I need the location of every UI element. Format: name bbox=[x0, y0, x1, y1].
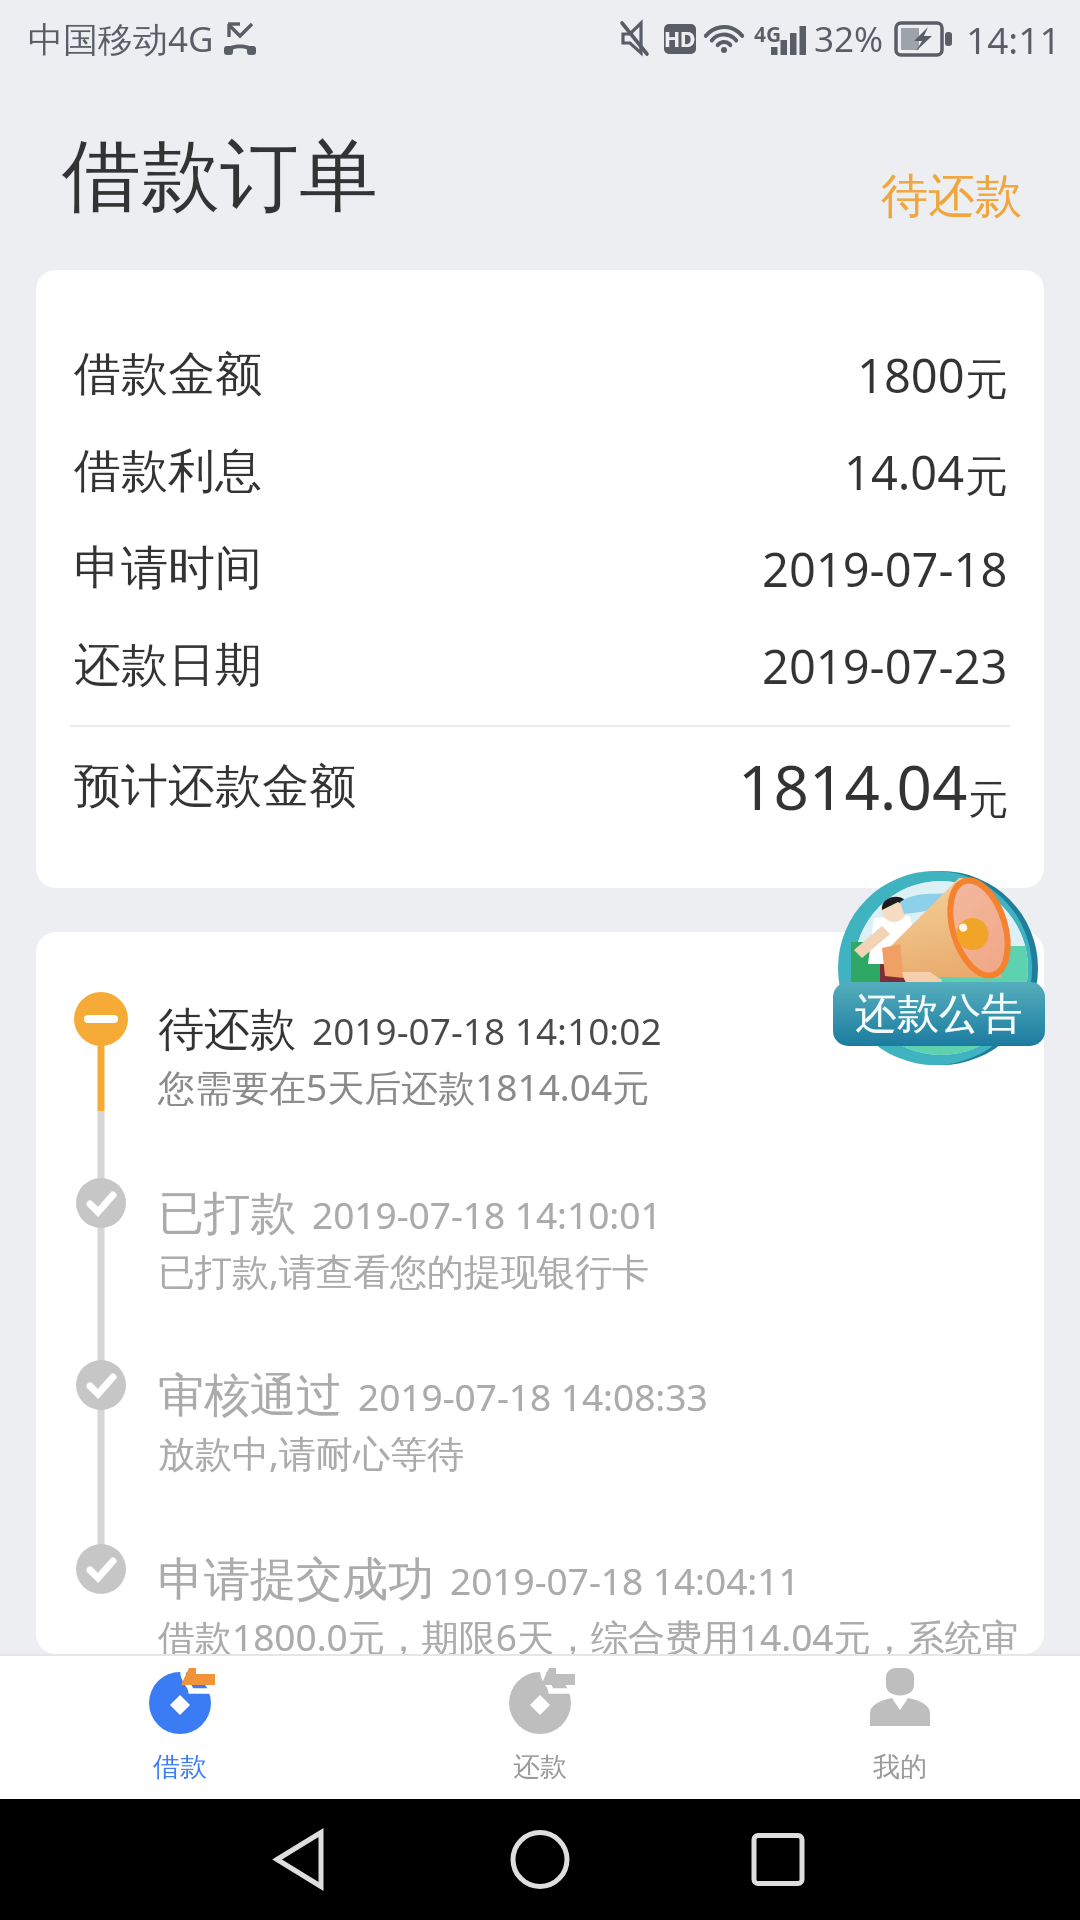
staticText: 借款 bbox=[153, 1750, 207, 1784]
staticText: 2019-07-18 14:10:01 bbox=[312, 1189, 662, 1239]
staticText: 申请提交成功 bbox=[158, 1551, 434, 1609]
staticText: 2019-07-23 bbox=[762, 634, 1008, 698]
staticText: 借款金额 bbox=[74, 345, 262, 404]
staticText: 还款日期 bbox=[74, 636, 262, 695]
button[interactable]: Recent apps bbox=[720, 1799, 1080, 1920]
staticText: 1814.04 bbox=[738, 744, 968, 828]
staticText: 1800 bbox=[857, 343, 965, 407]
button[interactable]: 已打款 bbox=[158, 1185, 1044, 1296]
button[interactable]: 借款金额 bbox=[36, 270, 1044, 888]
staticText: 元 bbox=[965, 353, 1008, 407]
staticText: 预计还款金额 bbox=[74, 757, 356, 816]
staticText: 待还款 bbox=[158, 1001, 296, 1059]
staticText: 元 bbox=[968, 774, 1008, 824]
button[interactable]: 待还款 bbox=[875, 161, 1028, 232]
staticText: 您需要在5天后还款1814.04元 bbox=[158, 1061, 650, 1112]
staticText: 已打款 bbox=[158, 1185, 296, 1243]
staticText: 2019-07-18 14:04:11 bbox=[450, 1555, 800, 1605]
staticText: 元 bbox=[965, 450, 1008, 504]
staticText: 我的 bbox=[873, 1750, 927, 1784]
button[interactable]: 借款 bbox=[0, 1656, 360, 1799]
staticText: 2019-07-18 14:10:02 bbox=[312, 1005, 662, 1055]
staticText: 申请时间 bbox=[74, 539, 262, 598]
staticText: 4G bbox=[754, 20, 782, 49]
button[interactable]: Back bbox=[0, 1799, 360, 1920]
button[interactable]: 我的 bbox=[720, 1656, 1080, 1799]
staticText: 待还款 bbox=[881, 167, 1022, 226]
staticText: 审核通过 bbox=[158, 1367, 342, 1425]
staticText: 2019-07-18 bbox=[762, 537, 1008, 601]
button[interactable]: 申请提交成功 bbox=[158, 1551, 1044, 1654]
staticText: 放款中,请耐心等待 bbox=[158, 1427, 464, 1478]
staticText: 32% bbox=[814, 15, 884, 63]
staticText: 已打款,请查看您的提现银行卡 bbox=[158, 1245, 649, 1296]
button[interactable]: 还款公告 bbox=[832, 866, 1046, 1066]
staticText: 还款公告 bbox=[855, 988, 1023, 1041]
staticText: 借款订单 bbox=[62, 127, 378, 227]
button[interactable]: 审核通过 bbox=[158, 1367, 1044, 1478]
staticText: HD bbox=[664, 25, 696, 54]
staticText: 还款 bbox=[513, 1750, 567, 1784]
button[interactable]: 待还款 bbox=[158, 1001, 1044, 1112]
staticText: 中国移动4G bbox=[28, 15, 214, 63]
button[interactable]: 还款 bbox=[360, 1656, 720, 1799]
staticText: 14:11 bbox=[966, 14, 1061, 64]
staticText: 借款1800.0元，期限6天，综合费用14.04元，系统审 bbox=[158, 1611, 1019, 1654]
staticText: 2019-07-18 14:08:33 bbox=[358, 1371, 708, 1421]
button[interactable]: Home bbox=[360, 1799, 720, 1920]
staticText: 借款利息 bbox=[74, 442, 262, 501]
staticText: 14.04 bbox=[844, 440, 965, 504]
